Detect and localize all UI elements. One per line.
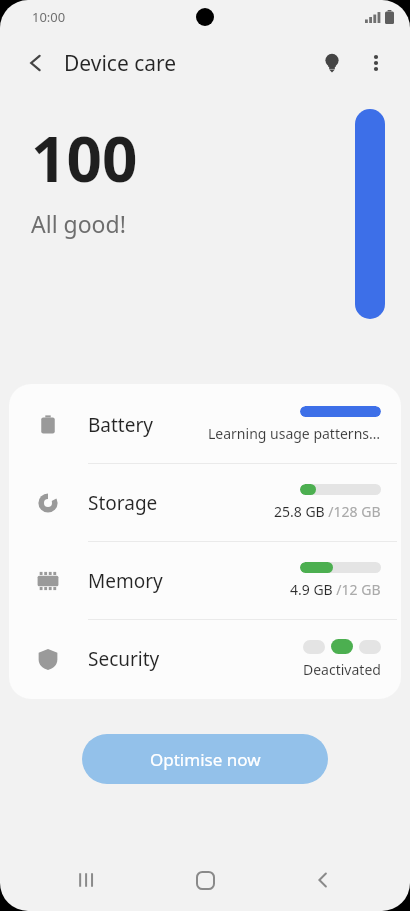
staticText: 100 [31, 116, 138, 200]
button[interactable]: Security [9, 620, 401, 697]
button[interactable]: More options [354, 41, 398, 85]
staticText: Memory [88, 568, 163, 594]
button[interactable]: Battery [9, 386, 401, 463]
button[interactable]: Back [292, 849, 354, 911]
staticText: Learning usage patterns… [208, 424, 381, 443]
button[interactable]: Tips [310, 41, 354, 85]
staticText: Storage [88, 490, 158, 516]
staticText: 25.8 GB /128 GB [274, 502, 381, 521]
staticText: Deactivated [303, 660, 381, 679]
button[interactable]: Back [14, 41, 58, 85]
staticText: Optimise now [150, 748, 261, 771]
button[interactable]: Storage [9, 464, 401, 541]
button[interactable]: Recents [56, 849, 118, 911]
staticText: Battery [88, 412, 153, 438]
staticText: Device care [64, 49, 177, 78]
staticText: 4.9 GB /12 GB [290, 580, 381, 599]
staticText: All good! [31, 208, 126, 239]
staticText: Security [88, 646, 160, 672]
staticText: 10:00 [32, 8, 66, 26]
button[interactable]: Optimise now [82, 734, 328, 784]
button[interactable]: Home [174, 849, 236, 911]
button[interactable]: Memory [9, 542, 401, 619]
